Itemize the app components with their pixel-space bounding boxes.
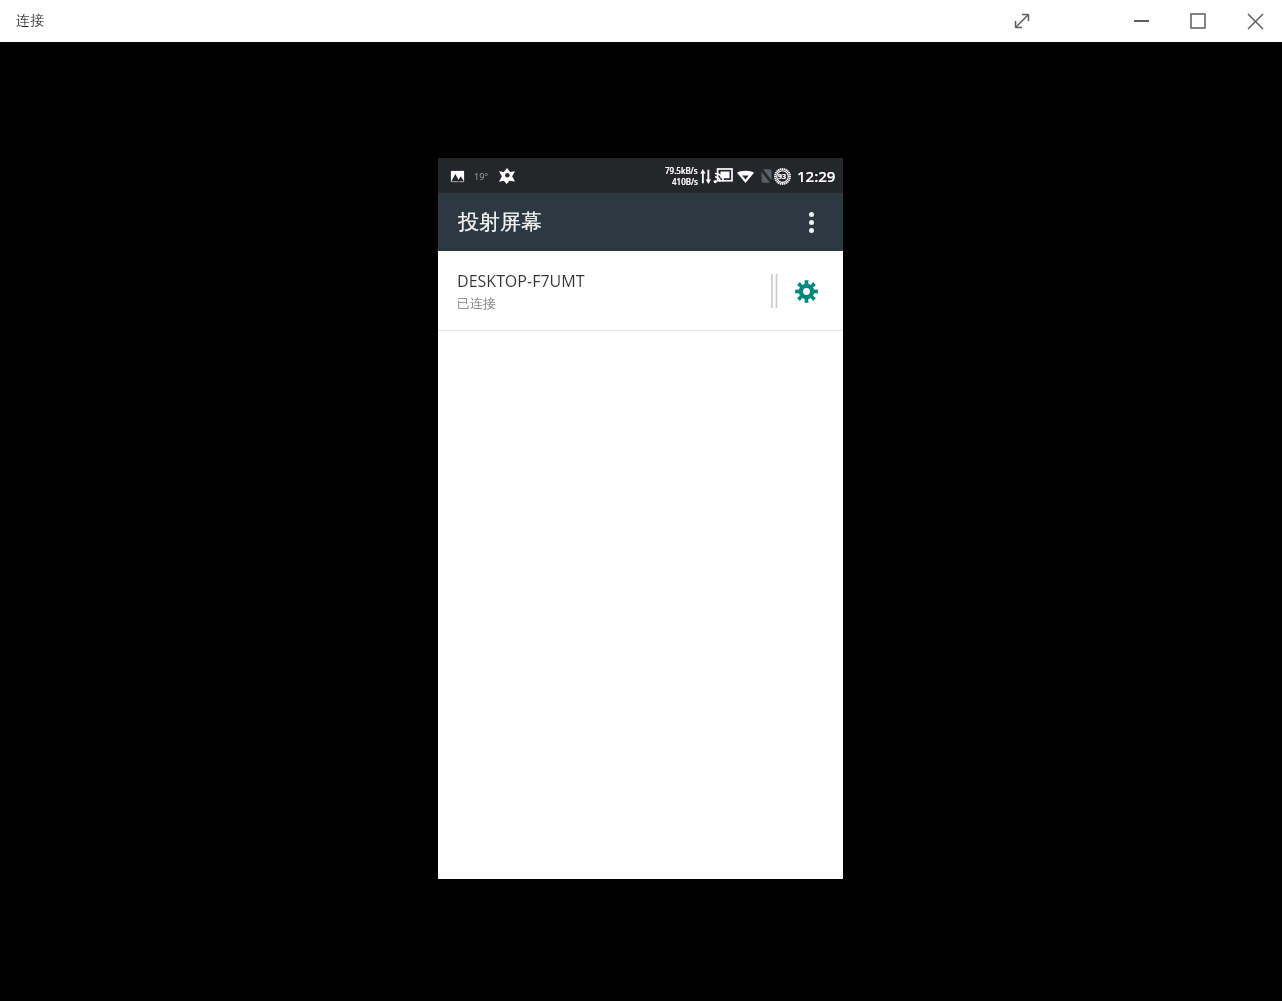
staticText: 19° <box>474 170 489 182</box>
staticText: DESKTOP-F7UMT <box>457 270 585 292</box>
staticText: 投射屏幕 <box>458 209 542 235</box>
staticText: 93 <box>778 172 787 182</box>
staticText: 12:29 <box>797 166 836 186</box>
button[interactable]: More options <box>789 200 833 244</box>
staticText: 79.5kB/s <box>665 165 698 176</box>
button[interactable]: Close <box>1232 0 1278 42</box>
button[interactable]: Minimize <box>1118 0 1164 42</box>
button[interactable]: Settings <box>779 264 833 318</box>
staticText: 410B/s <box>672 176 698 187</box>
button[interactable]: Fullscreen <box>998 0 1046 42</box>
button[interactable]: DESKTOP-F7UMT <box>438 251 843 330</box>
staticText: 已连接 <box>457 295 496 311</box>
staticText: 连接 <box>16 12 44 30</box>
button[interactable]: Maximize <box>1175 0 1221 42</box>
